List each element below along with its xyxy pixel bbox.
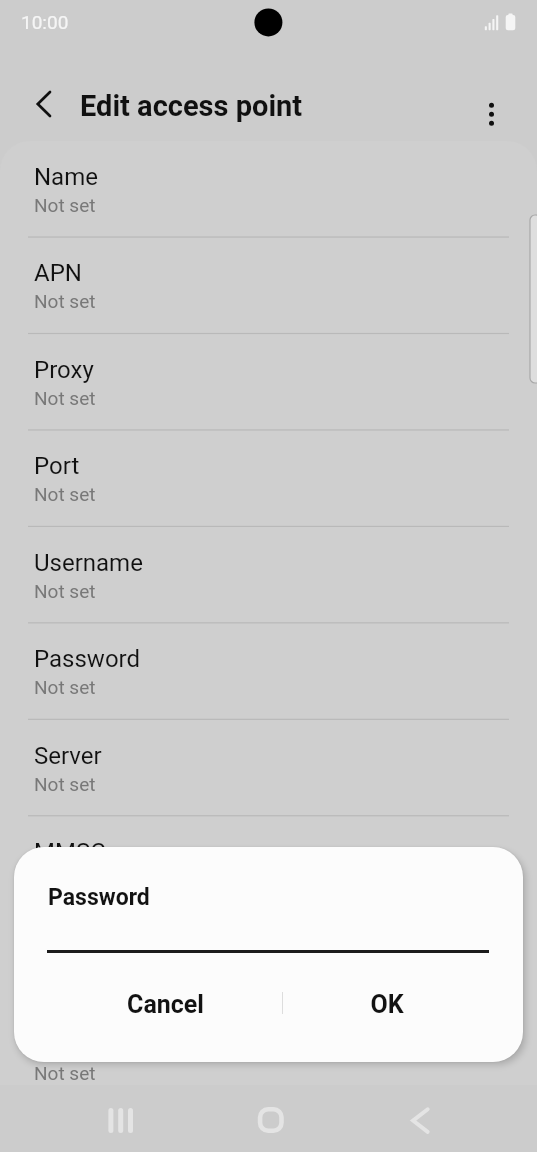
- staticText: Port: [34, 452, 80, 480]
- staticText: Not set: [34, 1062, 96, 1084]
- button[interactable]: More options: [470, 70, 514, 114]
- button[interactable]: Recent apps: [88, 1087, 154, 1152]
- button[interactable]: MMS proxy: [0, 913, 537, 1009]
- button[interactable]: Cancel: [47, 976, 283, 1032]
- staticText: Not set: [34, 676, 96, 698]
- staticText: Server: [34, 742, 102, 770]
- button[interactable]: Port: [0, 430, 537, 526]
- staticText: MMSC: [34, 838, 106, 866]
- staticText: Cancel: [127, 990, 204, 1019]
- staticText: APN: [34, 259, 82, 287]
- staticText: Not set: [34, 869, 96, 891]
- staticText: OK: [370, 990, 404, 1019]
- button[interactable]: APN: [0, 237, 537, 333]
- button[interactable]: Navigate up: [21, 70, 65, 114]
- button[interactable]: Username: [0, 527, 537, 623]
- staticText: Not set: [34, 580, 96, 602]
- staticText: 10:00: [21, 11, 69, 33]
- button[interactable]: MMS port: [0, 1009, 537, 1085]
- staticText: Proxy: [34, 356, 94, 384]
- button[interactable]: Server: [0, 720, 537, 816]
- button[interactable]: Back: [393, 1087, 459, 1152]
- button[interactable]: Name: [0, 141, 537, 237]
- button[interactable]: Home: [238, 1087, 304, 1152]
- staticText: Password: [48, 884, 150, 911]
- staticText: Name: [34, 163, 98, 191]
- staticText: Not set: [34, 773, 96, 795]
- staticText: Not set: [34, 483, 96, 505]
- button[interactable]: OK: [283, 976, 490, 1032]
- button[interactable]: Proxy: [0, 334, 537, 430]
- button[interactable]: Password: [0, 623, 537, 719]
- staticText: Not set: [34, 387, 96, 409]
- button[interactable]: MMSC: [0, 816, 537, 912]
- staticText: Username: [34, 549, 143, 577]
- staticText: Password: [34, 645, 141, 673]
- staticText: Not set: [34, 290, 96, 312]
- staticText: Edit access point: [80, 89, 303, 123]
- staticText: Not set: [34, 194, 96, 216]
- staticText: MMS proxy: [34, 935, 155, 963]
